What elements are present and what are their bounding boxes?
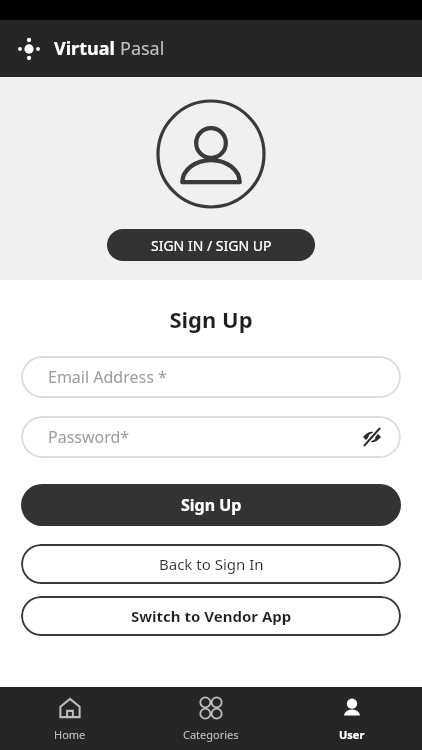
button[interactable]: Categories [140, 687, 281, 750]
staticText: Password* [48, 426, 130, 448]
staticText: Back to Sign In [159, 554, 264, 574]
staticText: Email Address * [48, 366, 167, 388]
button[interactable]: SIGN IN / SIGN UP [107, 229, 315, 261]
staticText: Virtual [54, 36, 115, 61]
button[interactable]: Sign Up [21, 484, 401, 526]
staticText: Switch to Vendor App [131, 606, 292, 626]
staticText: SIGN IN / SIGN UP [151, 236, 272, 255]
button[interactable]: Password* [21, 416, 401, 458]
button[interactable]: Switch to Vendor App [21, 596, 401, 636]
staticText: Sign Up [169, 304, 253, 334]
staticText: Categories [183, 727, 239, 742]
button[interactable]: Show password [359, 424, 385, 450]
staticText: User [339, 727, 365, 742]
button[interactable]: Back to Sign In [21, 544, 401, 584]
button[interactable]: User [281, 687, 422, 750]
button[interactable]: Email Address * [21, 356, 401, 398]
staticText: Sign Up [181, 494, 242, 516]
button[interactable]: Home [0, 687, 140, 750]
staticText: Home [54, 727, 86, 742]
staticText: Pasal [120, 36, 165, 61]
